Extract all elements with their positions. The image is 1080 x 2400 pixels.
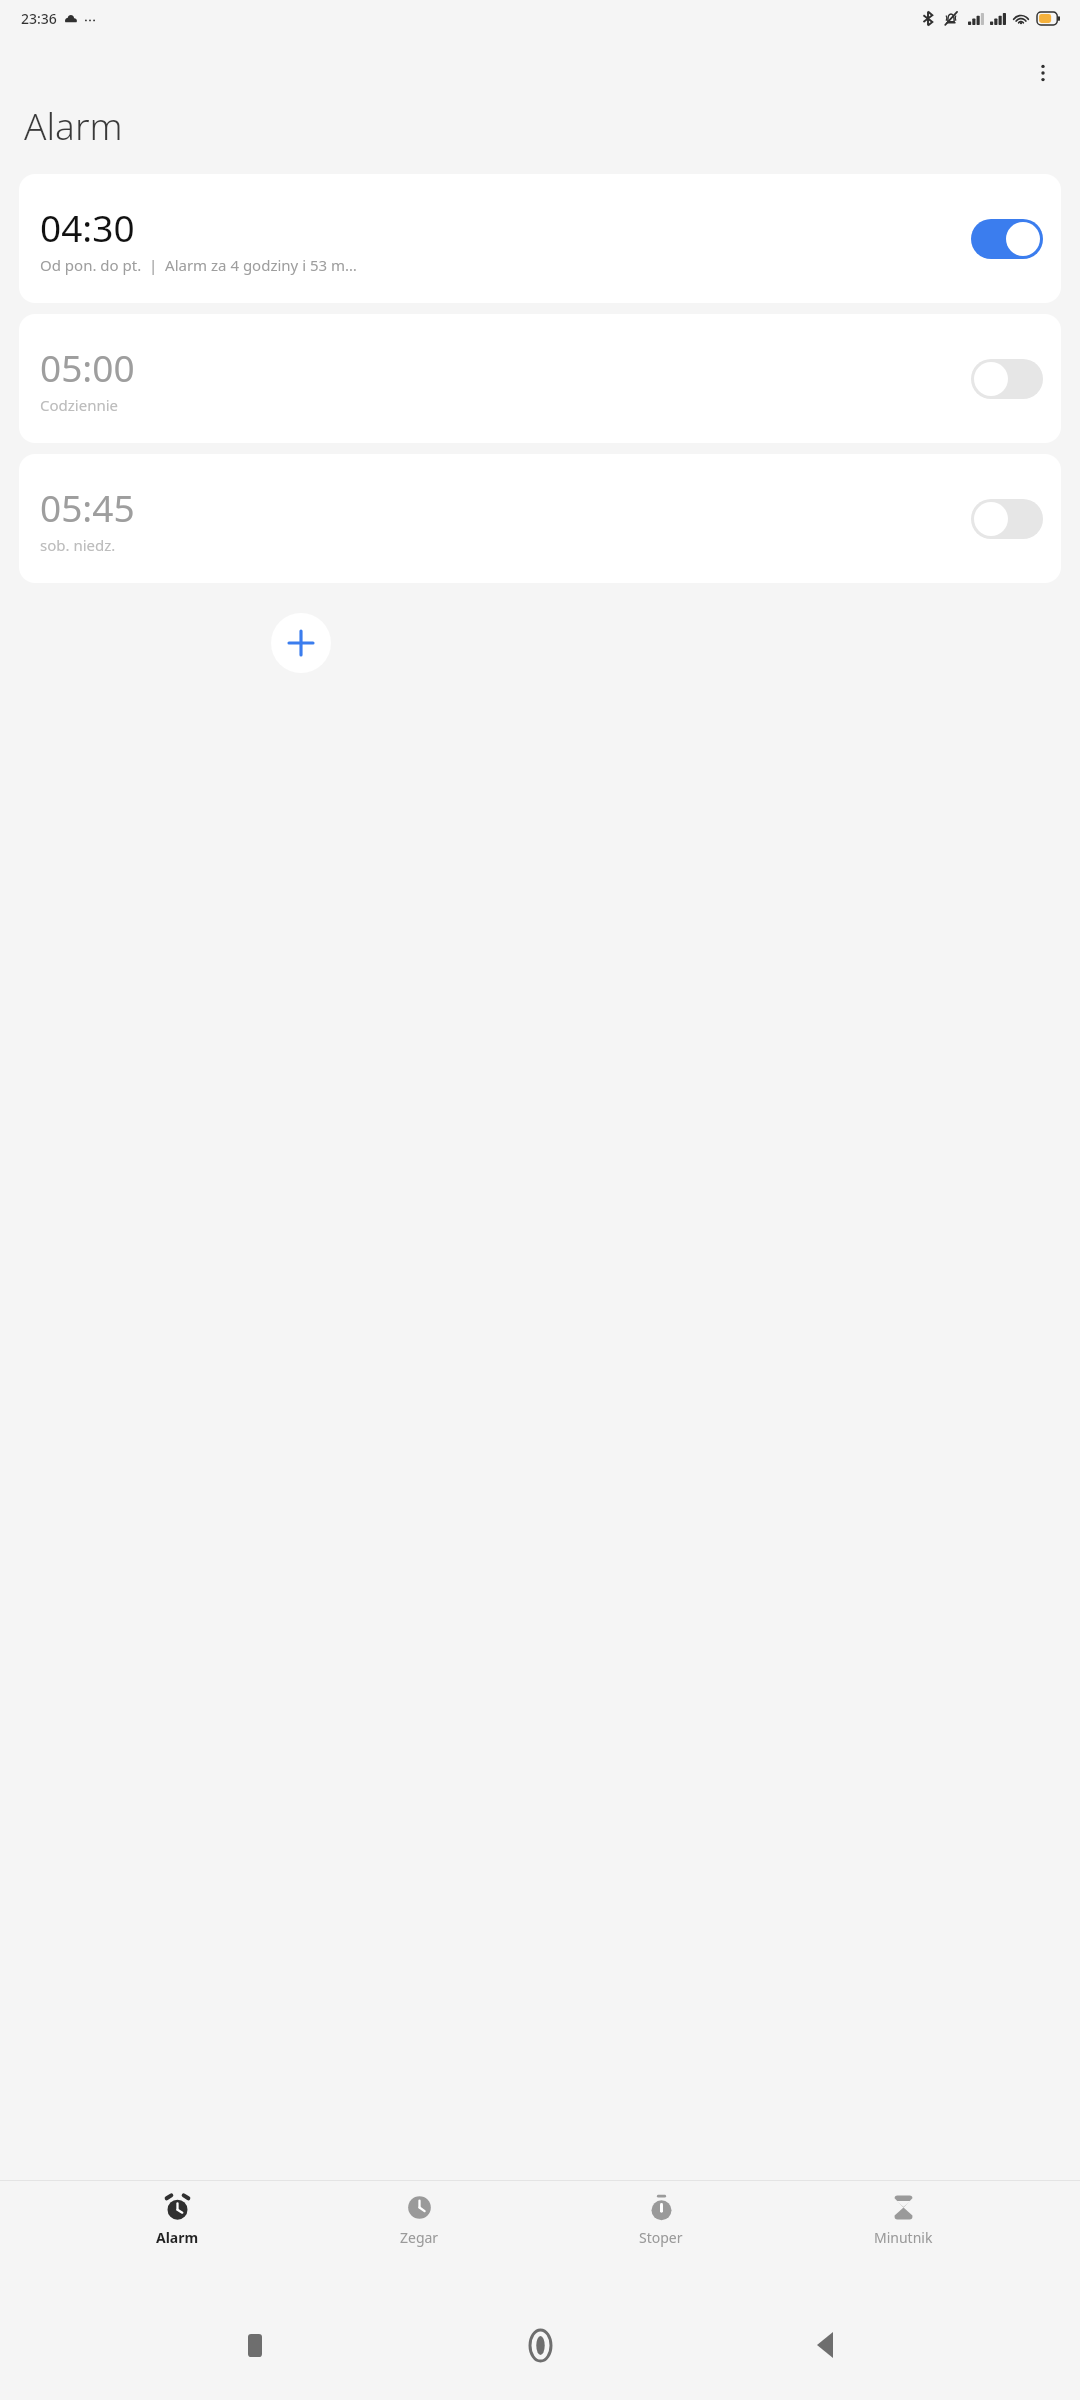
staticText: 23:36 bbox=[21, 9, 57, 28]
staticText: Zegar bbox=[400, 2228, 439, 2247]
button[interactable]: Zegar bbox=[354, 2190, 484, 2251]
staticText: 05:45 bbox=[40, 482, 135, 532]
button[interactable]: Minutnik bbox=[838, 2190, 968, 2251]
button[interactable]: Home bbox=[510, 2315, 570, 2375]
button[interactable]: Add alarm bbox=[271, 613, 331, 673]
staticText: Alarm bbox=[156, 2228, 199, 2247]
button[interactable]: Back bbox=[795, 2315, 855, 2375]
staticText: Stoper bbox=[639, 2228, 683, 2247]
button[interactable]: Toggle alarm 05:45 bbox=[971, 499, 1043, 539]
button[interactable]: 04:30 bbox=[19, 174, 1061, 303]
staticText: 04:30 bbox=[40, 202, 135, 252]
button[interactable]: More options bbox=[1016, 46, 1070, 100]
button[interactable]: Toggle alarm 04:30 bbox=[971, 219, 1043, 259]
staticText: Codziennie bbox=[40, 395, 119, 415]
button[interactable]: Alarm bbox=[112, 2190, 242, 2251]
button[interactable]: Toggle alarm 05:00 bbox=[971, 359, 1043, 399]
staticText: Od pon. do pt. | Alarm za 4 godziny i 53… bbox=[40, 255, 357, 275]
button[interactable]: 05:00 bbox=[19, 314, 1061, 443]
staticText: Minutnik bbox=[874, 2228, 933, 2247]
button[interactable]: Stoper bbox=[596, 2190, 726, 2251]
staticText: sob. niedz. bbox=[40, 535, 116, 555]
button[interactable]: 05:45 bbox=[19, 454, 1061, 583]
staticText: Alarm bbox=[24, 100, 123, 150]
button[interactable]: Recents bbox=[225, 2315, 285, 2375]
staticText: 05:00 bbox=[40, 342, 135, 392]
